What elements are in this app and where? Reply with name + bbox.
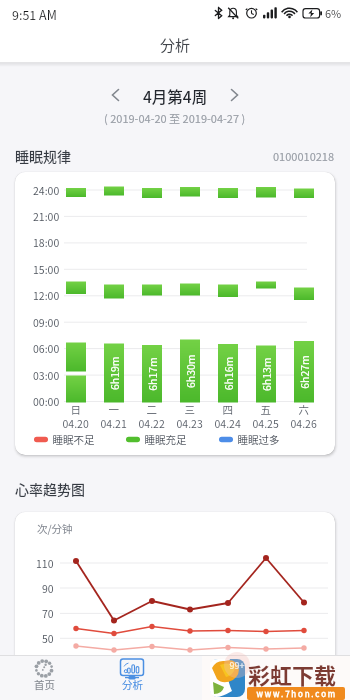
staticText: 首页 <box>34 677 55 692</box>
button[interactable] <box>225 86 243 104</box>
staticText: 分析 <box>122 677 143 692</box>
staticText: 9:51 AM <box>12 5 57 23</box>
staticText: 分析 <box>160 34 191 56</box>
button[interactable]: 分析 <box>88 655 176 700</box>
staticText: 心率趋势图 <box>15 479 85 499</box>
button[interactable] <box>202 656 350 700</box>
staticText: ( 2019-04-20 至 2019-04-27 ) <box>104 110 246 126</box>
staticText: 0100010218 <box>273 148 335 164</box>
staticText: 睡眠规律 <box>15 146 71 166</box>
staticText: 4月第4周 <box>143 85 208 107</box>
button[interactable] <box>107 86 125 104</box>
button[interactable]: 首页 <box>0 655 88 700</box>
